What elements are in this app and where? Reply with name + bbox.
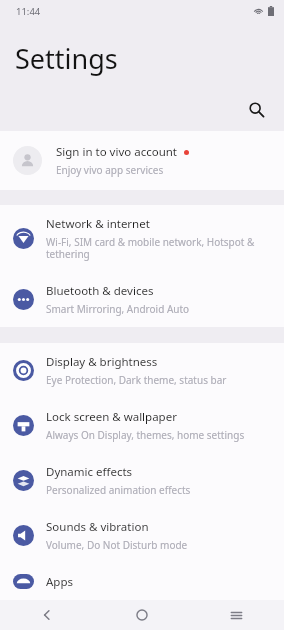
staticText: Personalized animation effects xyxy=(46,483,191,497)
button[interactable]: Back xyxy=(0,600,94,630)
staticText: Bluetooth & devices xyxy=(46,283,154,299)
button[interactable]: Apps xyxy=(0,563,284,600)
staticText: Always On Display, themes, home settings xyxy=(46,428,245,442)
staticText: Sign in to vivo account xyxy=(56,144,178,160)
staticText: Sounds & vibration xyxy=(46,519,149,535)
button[interactable]: Sounds & vibration xyxy=(0,508,284,563)
button[interactable]: Lock screen & wallpaper xyxy=(0,398,284,453)
button[interactable]: Sign in to vivo account xyxy=(0,131,284,190)
staticText: Smart Mirroring, Android Auto xyxy=(46,302,190,316)
staticText: Settings xyxy=(15,40,118,77)
button[interactable]: Network & internet xyxy=(0,205,284,272)
staticText: Apps xyxy=(46,574,74,589)
button[interactable]: Home xyxy=(94,600,189,630)
staticText: Network & internet xyxy=(46,216,150,232)
staticText: Display & brightness xyxy=(46,354,158,370)
button[interactable]: Display & brightness xyxy=(0,343,284,398)
button[interactable]: Bluetooth & devices xyxy=(0,272,284,327)
staticText: Lock screen & wallpaper xyxy=(46,409,177,425)
staticText: Volume, Do Not Disturb mode xyxy=(46,538,188,552)
staticText: Wi-Fi, SIM card & mobile network, Hotspo… xyxy=(46,235,270,261)
staticText: Dynamic effects xyxy=(46,464,133,480)
button[interactable]: Search xyxy=(236,89,276,129)
staticText: Eye Protection, Dark theme, status bar xyxy=(46,373,227,387)
staticText: 11:44 xyxy=(16,5,41,18)
button[interactable]: Dynamic effects xyxy=(0,453,284,508)
staticText: Enjoy vivo app services xyxy=(56,163,164,177)
button[interactable]: Recent apps xyxy=(189,600,284,630)
